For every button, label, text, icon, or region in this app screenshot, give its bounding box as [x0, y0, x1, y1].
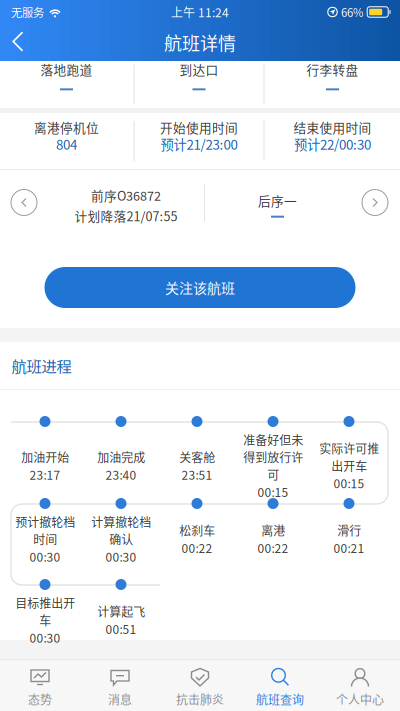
- staticText: 00:21: [333, 539, 364, 556]
- staticText: 航班查询: [256, 690, 304, 708]
- staticText: 离港停机位: [34, 118, 99, 136]
- button[interactable]: 关注该航班: [44, 267, 355, 308]
- button[interactable]: 个人中心: [320, 659, 400, 710]
- staticText: 预计22/00:30: [294, 134, 371, 154]
- staticText: 实际许可推出开车: [319, 440, 379, 474]
- staticText: 00:30: [29, 629, 60, 646]
- staticText: 开始使用时间: [160, 118, 238, 136]
- staticText: 66%: [341, 4, 363, 20]
- staticText: 到达口: [179, 60, 218, 78]
- staticText: 关客舱: [179, 448, 215, 466]
- button[interactable]: Previous flight: [0, 170, 48, 234]
- staticText: 00:22: [257, 539, 288, 556]
- staticText: 关注该航班: [165, 277, 235, 298]
- staticText: 上午 11:24: [171, 3, 229, 21]
- staticText: 00:30: [29, 548, 60, 565]
- staticText: 加油开始: [21, 448, 69, 466]
- staticText: 后序一: [258, 191, 297, 210]
- staticText: 结束使用时间: [293, 118, 371, 136]
- staticText: 23:40: [105, 466, 136, 483]
- staticText: 松刹车: [179, 522, 215, 539]
- staticText: 加油完成: [97, 448, 145, 466]
- staticText: 航班进程: [11, 354, 71, 377]
- staticText: 804: [56, 134, 77, 154]
- button[interactable]: 抗击肺炎: [160, 659, 240, 710]
- staticText: 航班详情: [164, 29, 236, 56]
- staticText: 计算撤轮档确认: [91, 513, 151, 548]
- staticText: 个人中心: [336, 690, 384, 708]
- staticText: 计划降落21/07:55: [74, 206, 177, 225]
- staticText: 23:17: [29, 466, 60, 483]
- staticText: 00:15: [257, 483, 288, 500]
- staticText: 00:15: [333, 474, 364, 492]
- staticText: 前序O36872: [91, 186, 161, 204]
- staticText: 计算起飞: [97, 603, 145, 620]
- staticText: 00:30: [105, 548, 136, 565]
- button[interactable]: 消息: [80, 659, 160, 710]
- staticText: 离港: [261, 522, 285, 539]
- staticText: 23:51: [181, 466, 212, 483]
- staticText: 消息: [108, 690, 132, 708]
- staticText: 滑行: [337, 522, 361, 539]
- staticText: 行李转盘: [306, 60, 358, 78]
- staticText: 目标推出开车: [15, 594, 75, 629]
- staticText: 态势: [28, 690, 52, 708]
- button[interactable]: Back: [0, 24, 38, 61]
- staticText: 抗击肺炎: [176, 690, 224, 708]
- button[interactable]: 态势: [0, 659, 80, 710]
- staticText: 00:22: [181, 539, 212, 556]
- staticText: 预计21/23:00: [160, 134, 237, 154]
- staticText: 无服务: [11, 4, 44, 20]
- button[interactable]: Next flight: [350, 170, 400, 234]
- staticText: 准备好但未得到放行许可: [243, 431, 303, 483]
- staticText: 预计撤轮档时间: [15, 513, 75, 548]
- button[interactable]: 航班查询: [240, 659, 320, 710]
- staticText: 00:51: [105, 620, 136, 637]
- staticText: 落地跑道: [40, 60, 92, 78]
